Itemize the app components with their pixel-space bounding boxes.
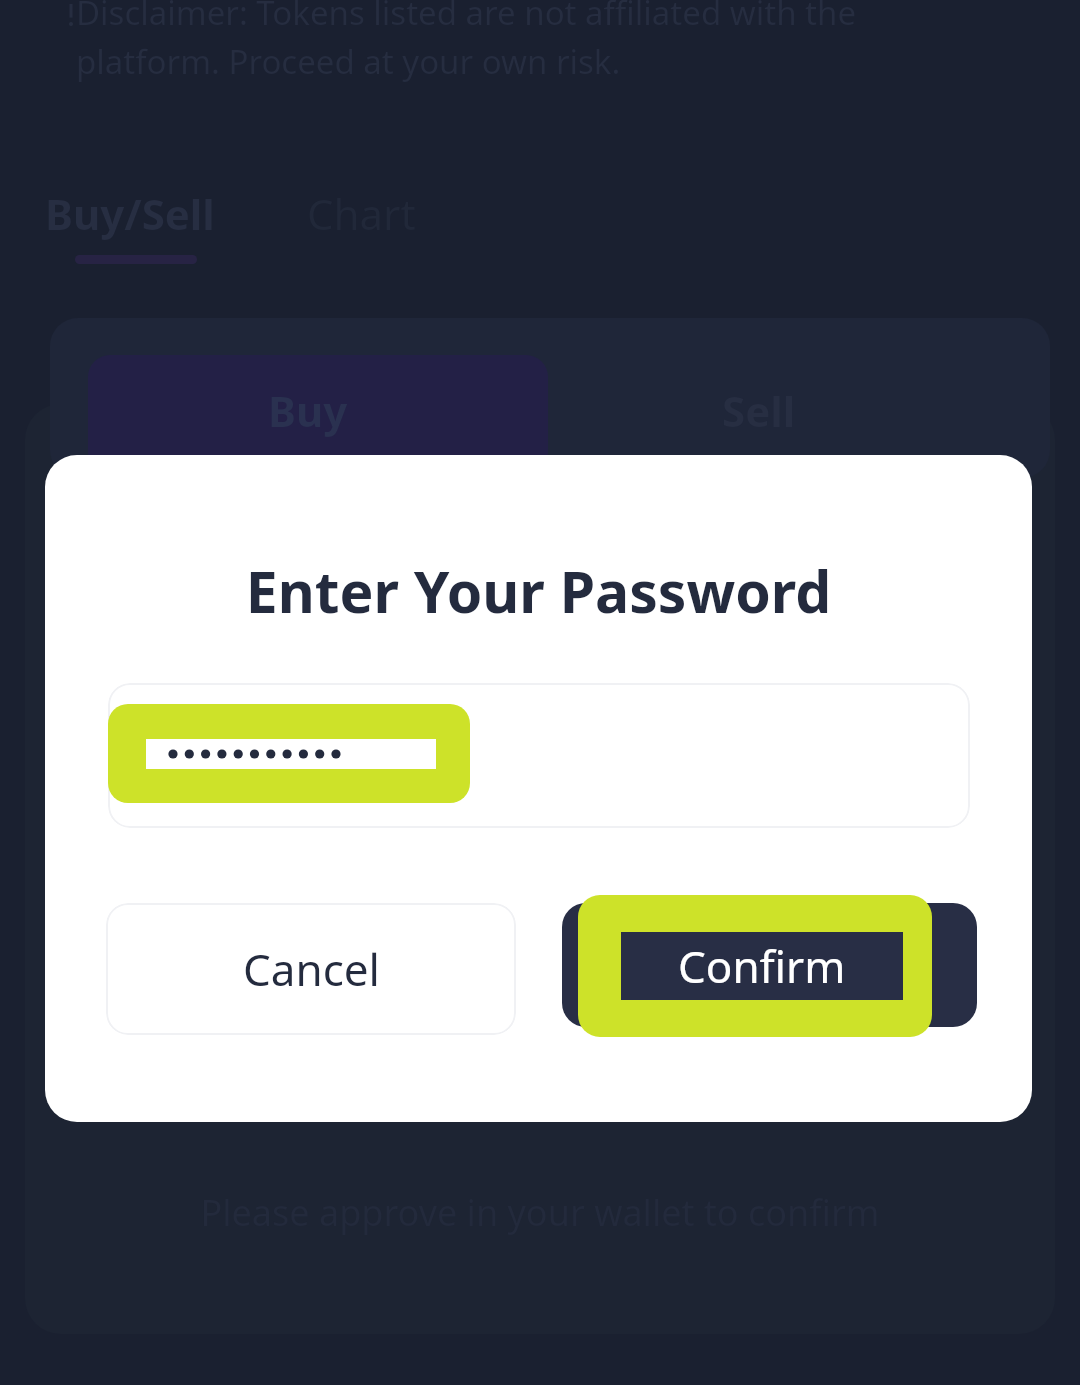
staticText: Disclaimer: Tokens listed are not affili… xyxy=(76,0,976,83)
staticText: Confirm xyxy=(678,936,846,996)
staticText: Enter Your Password xyxy=(45,552,1032,630)
button[interactable] xyxy=(562,903,977,1027)
button[interactable]: Cancel xyxy=(106,903,516,1035)
staticText: Buy xyxy=(268,382,348,439)
staticText: Cancel xyxy=(243,939,380,999)
staticText: Sell xyxy=(722,382,796,439)
button[interactable] xyxy=(108,683,970,828)
button[interactable]: Buy/Sell xyxy=(45,185,215,242)
